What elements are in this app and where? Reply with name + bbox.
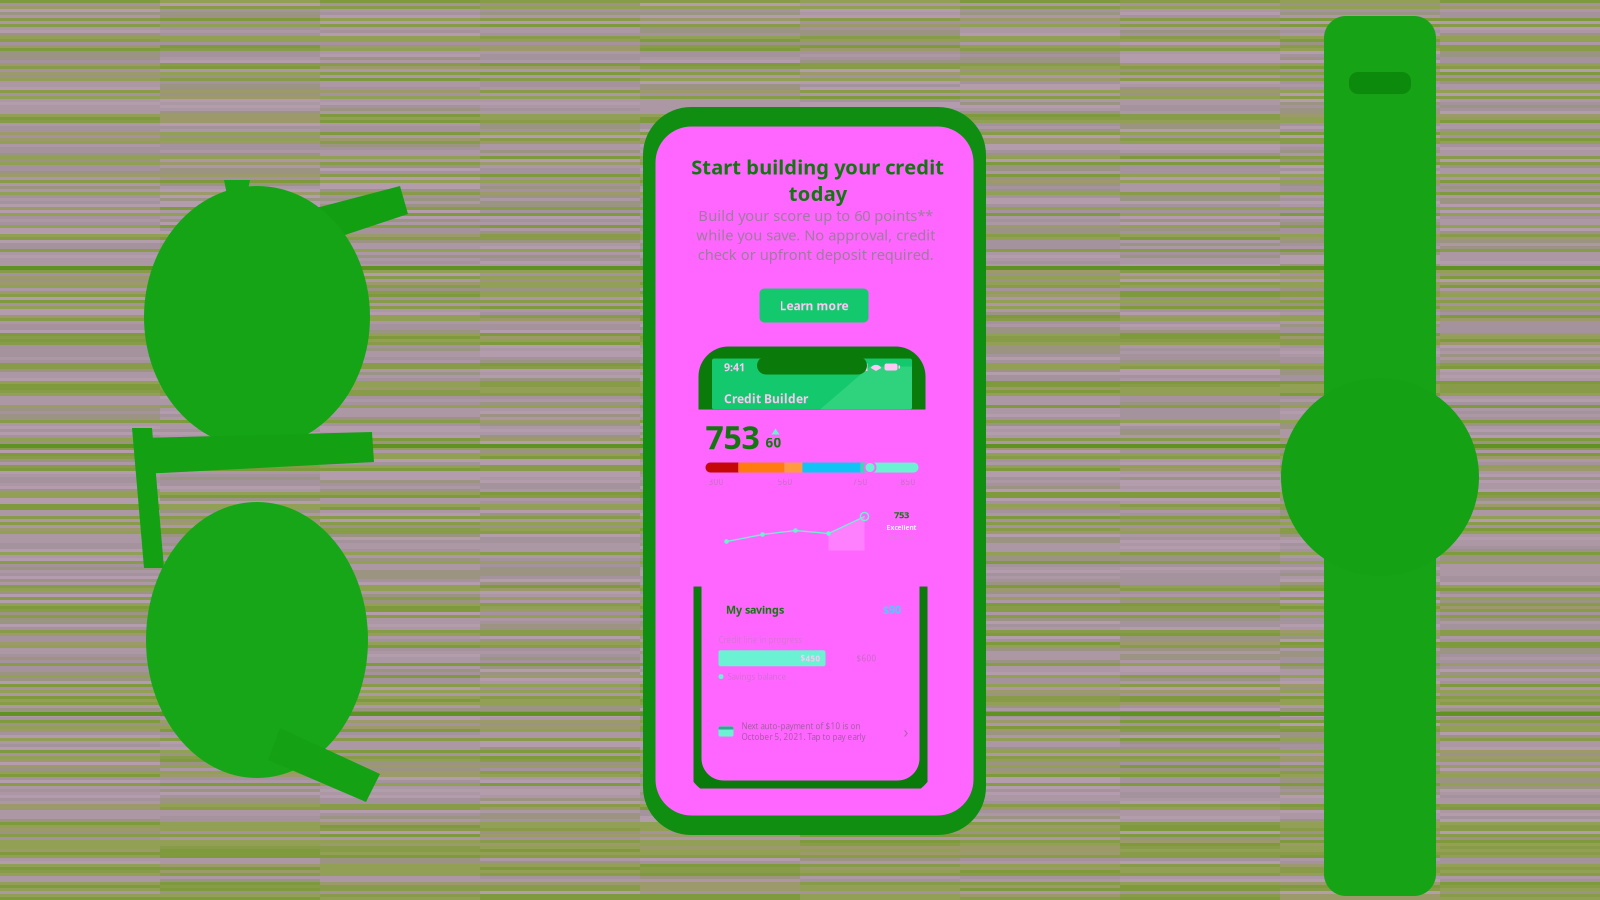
staticText: Excellent [886, 523, 916, 532]
button[interactable]: Next auto-payment of $10 is on October 5… [718, 718, 908, 744]
staticText: Next auto-payment of $10 is on October 5… [741, 721, 865, 742]
staticText: Sep 1, 2021 [888, 534, 915, 541]
staticText: Credit Builder [724, 391, 808, 406]
staticText: 753 [705, 415, 759, 458]
staticText: 753 [894, 508, 909, 521]
staticText: 300 [708, 476, 723, 487]
staticText: Credit line in progress [718, 635, 802, 645]
staticText: › [903, 721, 908, 742]
staticText: $90 [883, 602, 901, 617]
staticText: $600 [856, 653, 876, 664]
staticText: 60 [765, 433, 781, 451]
staticText: 850 [900, 476, 915, 487]
staticText: Start building your credit today [691, 153, 944, 207]
staticText: $450 [800, 653, 820, 664]
staticText: 560 [777, 476, 792, 487]
staticText: Learn more [779, 297, 848, 313]
staticText: 750 [852, 476, 867, 487]
button[interactable]: Learn more [759, 288, 868, 322]
staticText: Build your score up to 60 points** while… [696, 205, 935, 264]
staticText: 9:41 [724, 360, 745, 374]
staticText: Savings balance [727, 671, 786, 682]
staticText: My savings [726, 602, 784, 617]
